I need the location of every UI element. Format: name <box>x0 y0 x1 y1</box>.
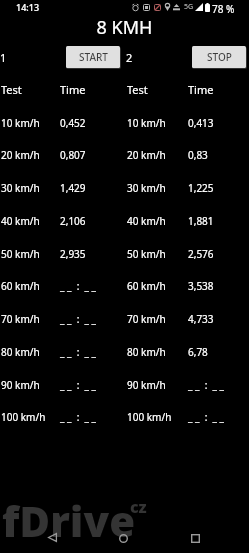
staticText: _ _ : _ _ <box>60 345 97 359</box>
staticText: 0,83 <box>188 148 208 162</box>
staticText: 6,78 <box>188 345 208 359</box>
staticText: 30 km/h <box>127 181 166 195</box>
button[interactable]: 70 km/h <box>0 303 249 335</box>
staticText: 30 km/h <box>1 181 40 195</box>
button[interactable]: 90 km/h <box>0 369 249 401</box>
staticText: 90 km/h <box>1 378 40 392</box>
staticText: 0,452 <box>60 116 86 130</box>
staticText: fDrive <box>2 492 136 549</box>
staticText: 50 km/h <box>127 247 166 261</box>
staticText: 40 km/h <box>127 214 166 228</box>
button[interactable]: 20 km/h <box>0 139 249 171</box>
staticText: 90 km/h <box>127 378 166 392</box>
staticText: 5G <box>184 2 194 12</box>
button[interactable]: 100 km/h <box>0 401 249 433</box>
staticText: 0,413 <box>188 116 214 130</box>
staticText: _ _ : _ _ <box>60 410 97 424</box>
button[interactable]: Recent apps <box>175 527 215 549</box>
staticText: 50 km/h <box>1 247 40 261</box>
staticText: 8 KMH <box>0 15 249 40</box>
staticText: _ _ : _ _ <box>60 279 97 293</box>
staticText: 80 km/h <box>1 345 40 359</box>
staticText: cz <box>130 496 147 518</box>
button[interactable]: Home <box>103 527 143 549</box>
staticText: START <box>79 50 108 64</box>
staticText: 70 km/h <box>127 312 166 326</box>
staticText: 1,881 <box>188 214 214 228</box>
staticText: 2 <box>126 50 133 65</box>
staticText: 70 km/h <box>1 312 40 326</box>
button[interactable]: Back <box>32 526 72 548</box>
button[interactable]: STOP <box>192 46 246 68</box>
staticText: 60 km/h <box>1 279 40 293</box>
staticText: 1,429 <box>60 181 86 195</box>
staticText: 2,935 <box>60 247 86 261</box>
staticText: 10 km/h <box>127 116 166 130</box>
button[interactable]: 10 km/h <box>0 107 249 139</box>
staticText: _ _ : _ _ <box>60 312 97 326</box>
staticText: 2,106 <box>60 214 86 228</box>
staticText: _ _ : _ _ <box>188 378 225 392</box>
staticText: STOP <box>207 50 232 64</box>
staticText: 80 km/h <box>127 345 166 359</box>
button[interactable]: 50 km/h <box>0 238 249 270</box>
staticText: 10 km/h <box>1 116 40 130</box>
staticText: 14:13 <box>16 1 40 13</box>
staticText: 100 km/h <box>1 410 46 424</box>
staticText: 20 km/h <box>1 148 40 162</box>
staticText: 40 km/h <box>1 214 40 228</box>
button[interactable]: 60 km/h <box>0 270 249 302</box>
staticText: _ _ : _ _ <box>188 410 225 424</box>
staticText: 3,538 <box>188 279 214 293</box>
button[interactable]: 30 km/h <box>0 172 249 204</box>
staticText: 78 % <box>212 2 235 16</box>
button[interactable]: 80 km/h <box>0 336 249 368</box>
staticText: _ _ : _ _ <box>60 378 97 392</box>
staticText: 2,576 <box>188 247 214 261</box>
staticText: 1 <box>0 50 7 65</box>
staticText: Test <box>127 82 148 96</box>
staticText: 20 km/h <box>127 148 166 162</box>
staticText: 0,807 <box>60 148 86 162</box>
staticText: 4,733 <box>188 312 214 326</box>
staticText: Time <box>188 82 214 96</box>
button[interactable]: 40 km/h <box>0 205 249 237</box>
staticText: 100 km/h <box>127 410 172 424</box>
staticText: 1,225 <box>188 181 214 195</box>
button[interactable]: START <box>66 46 120 68</box>
staticText: 60 km/h <box>127 279 166 293</box>
staticText: Time <box>60 82 86 96</box>
staticText: Test <box>1 82 22 96</box>
